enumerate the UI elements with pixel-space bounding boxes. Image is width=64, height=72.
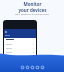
staticText: Monitor <box>23 1 42 7</box>
button[interactable]: Feature 2 <box>31 66 34 69</box>
staticText: with powerful & refined tools <box>0 12 64 15</box>
button[interactable]: Feature 1 <box>26 66 29 69</box>
button[interactable] <box>6 42 34 46</box>
button[interactable] <box>6 46 34 50</box>
button[interactable]: Feature 0 <box>21 66 24 69</box>
button[interactable]: Feature 4 <box>41 66 44 69</box>
button[interactable] <box>6 54 34 58</box>
button[interactable] <box>6 50 34 54</box>
button[interactable]: Feature 3 <box>36 66 39 69</box>
staticText: your devices <box>18 7 47 13</box>
